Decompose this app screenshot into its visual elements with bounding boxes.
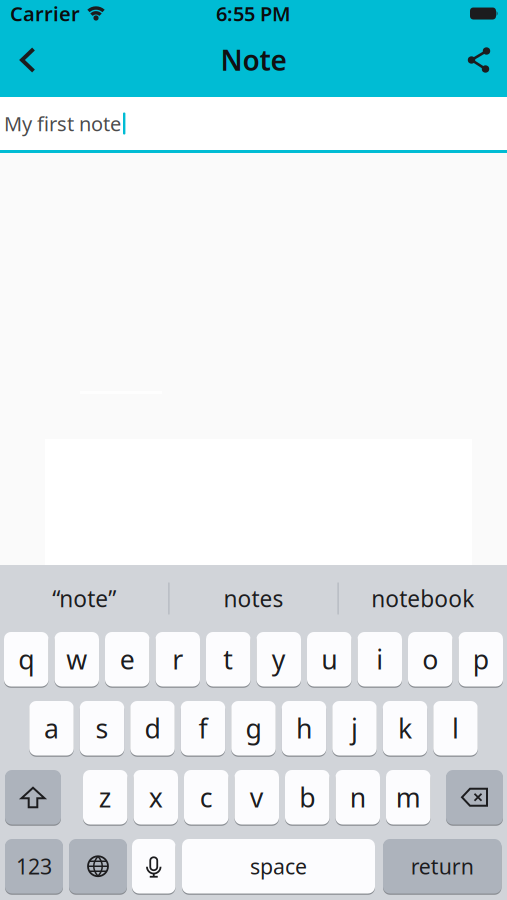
button[interactable]: c <box>184 770 228 824</box>
staticText: r <box>172 641 183 677</box>
staticText: i <box>376 641 383 677</box>
button[interactable]: m <box>386 770 430 824</box>
staticText: My first note <box>4 110 121 137</box>
button[interactable]: Next keyboard <box>69 839 127 893</box>
staticText: y <box>272 641 286 677</box>
staticText: w <box>66 641 87 677</box>
button[interactable]: Back <box>0 39 48 81</box>
staticText: notebook <box>371 583 474 613</box>
staticText: return <box>411 852 474 880</box>
button[interactable]: u <box>307 632 351 686</box>
button[interactable]: k <box>383 701 427 755</box>
staticText: space <box>250 852 307 880</box>
staticText: b <box>299 779 315 815</box>
button[interactable]: notes <box>169 565 337 632</box>
staticText: “note” <box>52 583 116 613</box>
button[interactable]: t <box>206 632 250 686</box>
button[interactable]: q <box>4 632 48 686</box>
staticText: o <box>422 641 438 677</box>
staticText: Carrier <box>10 0 80 27</box>
staticText: x <box>149 779 163 815</box>
staticText: p <box>473 641 489 677</box>
button[interactable]: i <box>357 632 402 686</box>
button[interactable]: j <box>332 701 377 755</box>
staticText: g <box>245 710 261 746</box>
button[interactable]: “note” <box>0 565 168 632</box>
button[interactable]: a <box>29 701 74 755</box>
button[interactable]: notebook <box>339 565 507 632</box>
button[interactable]: b <box>285 770 329 824</box>
staticText: d <box>144 710 160 746</box>
button[interactable]: y <box>256 632 301 686</box>
button[interactable]: n <box>335 770 380 824</box>
staticText: Note <box>220 41 286 79</box>
staticText: c <box>200 779 213 815</box>
button[interactable]: space <box>182 839 375 893</box>
button[interactable]: w <box>54 632 99 686</box>
staticText: notes <box>223 583 283 613</box>
staticText: l <box>452 710 459 746</box>
staticText: 6:55 PM <box>216 0 291 27</box>
staticText: n <box>350 779 366 815</box>
button[interactable]: f <box>181 701 225 755</box>
staticText: m <box>396 779 421 815</box>
button[interactable]: return <box>383 839 501 893</box>
button[interactable]: Numbers <box>5 839 63 893</box>
staticText: s <box>95 710 108 746</box>
button[interactable]: r <box>155 632 200 686</box>
button[interactable]: g <box>231 701 276 755</box>
staticText: f <box>198 710 207 746</box>
staticText: 123 <box>16 852 52 880</box>
button[interactable]: o <box>408 632 452 686</box>
button[interactable]: Delete <box>446 770 503 824</box>
button[interactable]: Dictation <box>132 839 175 893</box>
staticText: j <box>351 710 358 746</box>
button[interactable]: s <box>80 701 124 755</box>
button[interactable]: d <box>130 701 175 755</box>
button[interactable]: Shift <box>5 770 61 824</box>
staticText: v <box>250 779 264 815</box>
staticText: k <box>398 710 412 746</box>
staticText: u <box>321 641 337 677</box>
staticText: z <box>99 779 112 815</box>
button[interactable]: Share <box>454 38 507 81</box>
button[interactable]: p <box>458 632 503 686</box>
staticText: h <box>296 710 312 746</box>
button[interactable]: l <box>433 701 478 755</box>
staticText: a <box>44 710 59 746</box>
button[interactable]: z <box>83 770 127 824</box>
button[interactable]: h <box>282 701 326 755</box>
button[interactable]: v <box>234 770 279 824</box>
staticText: t <box>223 641 233 677</box>
button[interactable]: Note title text field <box>0 97 507 150</box>
staticText: q <box>18 641 34 677</box>
staticText: e <box>120 641 135 677</box>
button[interactable]: e <box>105 632 149 686</box>
button[interactable]: x <box>133 770 178 824</box>
